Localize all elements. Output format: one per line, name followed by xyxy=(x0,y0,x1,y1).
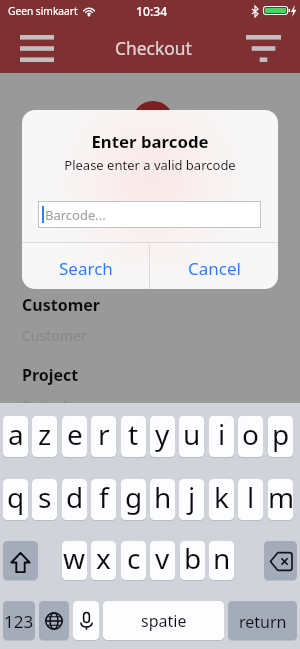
button[interactable]: w xyxy=(62,541,87,580)
staticText: spatie xyxy=(141,610,187,632)
staticText: Search xyxy=(59,257,113,280)
button[interactable]: spatie xyxy=(103,601,224,640)
button[interactable]: b xyxy=(180,541,205,580)
button[interactable]: 123 xyxy=(3,601,35,640)
staticText: a xyxy=(8,416,24,453)
button[interactable]: l xyxy=(238,479,263,520)
button[interactable]: c xyxy=(121,541,146,580)
staticText: f xyxy=(99,479,109,516)
button[interactable]: q xyxy=(3,479,28,520)
button[interactable]: x xyxy=(91,541,116,580)
button[interactable]: u xyxy=(179,416,204,457)
button[interactable]: Dictate xyxy=(73,601,99,640)
button[interactable]: k xyxy=(209,479,234,520)
button[interactable]: Menu xyxy=(14,27,60,69)
staticText: Checkout xyxy=(115,36,192,60)
staticText: m xyxy=(268,479,293,516)
staticText: t xyxy=(128,416,139,453)
staticText: b xyxy=(184,541,202,577)
staticText: Project xyxy=(22,364,79,386)
staticText: Barcode... xyxy=(45,206,106,224)
staticText: Cancel xyxy=(188,257,241,280)
staticText: i xyxy=(218,416,226,453)
staticText: Enter barcode xyxy=(22,130,278,153)
staticText: y xyxy=(155,416,170,453)
staticText: e xyxy=(67,416,83,453)
button[interactable]: return xyxy=(228,601,297,640)
button[interactable]: Backspace xyxy=(264,541,297,580)
button[interactable]: Filter xyxy=(240,27,287,69)
staticText: c xyxy=(127,541,141,577)
button[interactable]: z xyxy=(32,416,57,457)
staticText: Please enter a valid barcode xyxy=(22,156,278,174)
staticText: h xyxy=(154,479,172,516)
staticText: d xyxy=(66,479,84,516)
staticText: Geen simkaart xyxy=(8,4,78,18)
button[interactable]: n xyxy=(209,541,234,580)
staticText: q xyxy=(7,479,25,516)
staticText: s xyxy=(38,479,52,516)
button[interactable]: Shift xyxy=(3,541,38,580)
button[interactable]: s xyxy=(32,479,57,520)
staticText: v xyxy=(155,541,170,577)
staticText: j xyxy=(188,479,196,516)
staticText: l xyxy=(247,479,255,516)
button[interactable]: v xyxy=(150,541,175,580)
staticText: 123 xyxy=(4,610,34,633)
button[interactable]: d xyxy=(62,479,87,520)
button[interactable]: y xyxy=(150,416,175,457)
button[interactable]: Cancel xyxy=(150,245,278,289)
staticText: return xyxy=(239,611,287,633)
button[interactable]: Search xyxy=(22,245,149,289)
button[interactable]: p xyxy=(268,416,293,457)
button[interactable]: t xyxy=(121,416,146,457)
staticText: u xyxy=(183,416,201,453)
staticText: z xyxy=(38,416,52,453)
button[interactable]: a xyxy=(3,416,28,457)
button[interactable]: f xyxy=(91,479,116,520)
staticText: x xyxy=(96,541,111,577)
button[interactable]: m xyxy=(268,479,293,520)
staticText: k xyxy=(214,479,229,516)
staticText: p xyxy=(272,416,290,453)
staticText: Customer xyxy=(22,294,100,316)
staticText: r xyxy=(98,416,110,453)
staticText: o xyxy=(242,416,259,453)
button[interactable]: Change keyboard xyxy=(39,601,69,640)
button[interactable]: r xyxy=(91,416,116,457)
staticText: 10:34 xyxy=(136,3,168,20)
button[interactable]: j xyxy=(179,479,204,520)
button[interactable]: e xyxy=(62,416,87,457)
staticText: Customer xyxy=(22,326,87,345)
staticText: Project xyxy=(22,396,68,415)
staticText: g xyxy=(125,479,143,516)
staticText: w xyxy=(63,541,86,577)
button[interactable]: o xyxy=(238,416,263,457)
staticText: n xyxy=(213,541,231,577)
button[interactable]: h xyxy=(150,479,175,520)
button[interactable]: i xyxy=(209,416,234,457)
button[interactable]: g xyxy=(121,479,146,520)
